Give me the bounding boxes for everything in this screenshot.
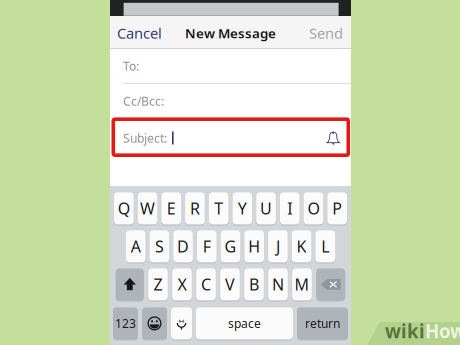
button[interactable]: X bbox=[172, 268, 192, 302]
button[interactable]: T bbox=[209, 192, 228, 226]
button[interactable]: Dictate bbox=[171, 307, 192, 341]
staticText: Subject: bbox=[123, 130, 167, 146]
staticText: P bbox=[332, 198, 342, 219]
staticText: E bbox=[167, 198, 176, 219]
button[interactable]: Subject: bbox=[110, 119, 351, 157]
staticText: C bbox=[201, 274, 211, 295]
button[interactable]: Cc/Bcc: bbox=[110, 84, 351, 118]
staticText: space bbox=[228, 315, 261, 331]
button[interactable]: Send bbox=[289, 17, 351, 49]
button[interactable]: W bbox=[138, 192, 157, 226]
staticText: Cancel bbox=[117, 23, 162, 43]
staticText: Q bbox=[118, 198, 130, 219]
button[interactable]: 123 bbox=[113, 307, 138, 341]
staticText: K bbox=[297, 236, 307, 257]
button[interactable]: V bbox=[220, 268, 240, 302]
button[interactable]: F bbox=[197, 230, 217, 264]
staticText: return bbox=[305, 315, 340, 331]
button[interactable]: Emoji bbox=[142, 307, 167, 341]
button[interactable]: G bbox=[221, 230, 240, 264]
staticText: X bbox=[177, 274, 186, 295]
button[interactable]: Delete bbox=[316, 268, 345, 302]
button[interactable]: Shift bbox=[116, 268, 144, 302]
staticText: How bbox=[425, 319, 460, 343]
button[interactable]: C bbox=[196, 268, 216, 302]
button[interactable]: S bbox=[150, 230, 169, 264]
staticText: D bbox=[177, 236, 189, 257]
staticText: G bbox=[224, 236, 236, 257]
button[interactable]: H bbox=[244, 230, 264, 264]
staticText: J bbox=[276, 236, 280, 257]
staticText: L bbox=[321, 236, 329, 257]
staticText: R bbox=[190, 198, 200, 219]
staticText: Cc/Bcc: bbox=[123, 93, 164, 109]
button[interactable]: B bbox=[244, 268, 264, 302]
button[interactable]: U bbox=[256, 192, 276, 226]
staticText: W bbox=[140, 198, 155, 219]
staticText: N bbox=[272, 274, 284, 295]
staticText: O bbox=[307, 198, 319, 219]
staticText: 123 bbox=[115, 315, 136, 331]
button[interactable]: K bbox=[292, 230, 311, 264]
button[interactable]: D bbox=[173, 230, 193, 264]
staticText: Send bbox=[309, 23, 343, 43]
staticText: wiki bbox=[385, 319, 425, 343]
staticText: T bbox=[214, 198, 223, 219]
button[interactable]: O bbox=[304, 192, 323, 226]
button[interactable]: Z bbox=[148, 268, 168, 302]
button[interactable]: return bbox=[297, 307, 348, 341]
staticText: To: bbox=[123, 58, 139, 74]
staticText: B bbox=[249, 274, 259, 295]
button[interactable]: Q bbox=[114, 192, 134, 226]
staticText: U bbox=[260, 198, 272, 219]
staticText: S bbox=[155, 236, 164, 257]
button[interactable]: E bbox=[161, 192, 181, 226]
button[interactable]: N bbox=[268, 268, 288, 302]
staticText: New Message bbox=[185, 24, 276, 42]
button[interactable]: M bbox=[292, 268, 312, 302]
button[interactable]: Cancel bbox=[110, 17, 172, 49]
button[interactable]: space bbox=[196, 307, 293, 341]
button[interactable]: To: bbox=[110, 49, 351, 83]
staticText: V bbox=[225, 274, 235, 295]
button[interactable]: L bbox=[315, 230, 335, 264]
button[interactable]: R bbox=[185, 192, 205, 226]
staticText: Y bbox=[238, 198, 247, 219]
staticText: H bbox=[248, 236, 260, 257]
staticText: F bbox=[203, 236, 211, 257]
button[interactable]: J bbox=[268, 230, 288, 264]
button[interactable]: Y bbox=[233, 192, 252, 226]
staticText: A bbox=[131, 236, 141, 257]
button[interactable]: I bbox=[280, 192, 300, 226]
button[interactable]: A bbox=[126, 230, 145, 264]
staticText: Z bbox=[153, 274, 162, 295]
staticText: I bbox=[287, 198, 292, 219]
button[interactable]: P bbox=[327, 192, 347, 226]
staticText: M bbox=[294, 274, 309, 295]
